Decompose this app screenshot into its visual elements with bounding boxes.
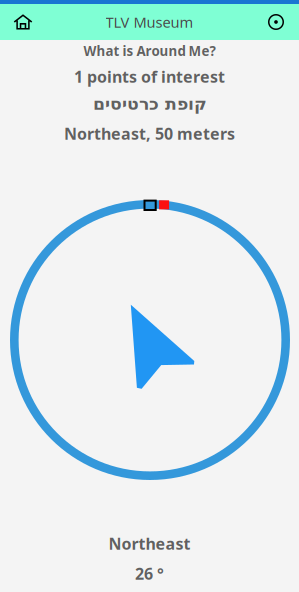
staticText: TLV Museum bbox=[105, 12, 193, 32]
staticText: What is Around Me? bbox=[83, 42, 215, 60]
staticText: Northeast bbox=[108, 533, 190, 554]
staticText: 26 ° bbox=[135, 563, 164, 584]
staticText: 1 points of interest bbox=[74, 66, 225, 87]
button[interactable]: Locate me bbox=[253, 4, 299, 40]
staticText: Northeast, 50 meters bbox=[64, 123, 235, 144]
staticText: קופת כרטיסים bbox=[92, 94, 206, 114]
button[interactable]: Home bbox=[0, 4, 46, 40]
